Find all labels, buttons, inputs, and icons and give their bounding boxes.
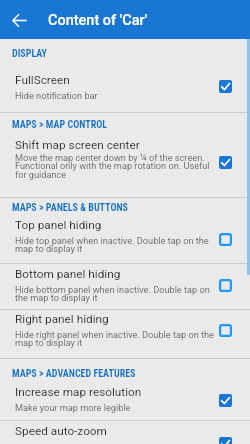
staticText: Top panel hiding <box>15 218 102 232</box>
button[interactable]: Right panel hiding <box>0 310 250 358</box>
staticText: MAPS > ADVANCED FEATURES <box>12 368 136 380</box>
staticText: FullScreen <box>15 73 70 87</box>
button[interactable]: Speed auto-zoom <box>0 421 250 444</box>
staticText: Increase map resolution <box>15 385 142 399</box>
staticText: Speed auto-zoom <box>15 424 107 438</box>
staticText: DISPLAY <box>12 48 47 60</box>
staticText: Shift map screen center <box>15 138 140 152</box>
button[interactable]: Back <box>0 1 38 39</box>
staticText: Hide top panel when inactive. Double tap… <box>15 235 215 254</box>
staticText: Hide bottom panel when inactive. Double … <box>15 284 215 303</box>
staticText: Content of 'Car' <box>48 12 148 29</box>
staticText: Move the map center down by ¼ of the scr… <box>15 152 215 180</box>
button[interactable]: Increase map resolution <box>0 385 250 420</box>
button[interactable]: Top panel hiding <box>0 218 250 263</box>
staticText: Hide right panel when inactive. Double t… <box>15 329 215 348</box>
button[interactable]: Bottom panel hiding <box>0 264 250 309</box>
staticText: Hide notification bar <box>15 90 98 101</box>
staticText: Make your map more legible <box>15 402 131 413</box>
staticText: Right panel hiding <box>15 312 109 326</box>
staticText: MAPS > PANELS & BUTTONS <box>12 202 128 214</box>
staticText: MAPS > MAP CONTROL <box>12 119 107 131</box>
button[interactable]: Shift map screen center <box>0 135 250 197</box>
button[interactable]: FullScreen <box>0 68 250 112</box>
staticText: Bottom panel hiding <box>15 267 121 281</box>
